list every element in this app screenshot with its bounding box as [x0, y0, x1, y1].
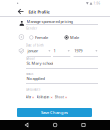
button[interactable]: januar	[27, 48, 51, 57]
staticText: Edit Profile	[28, 9, 49, 14]
staticText: Afar	[26, 95, 31, 99]
staticText: ×	[50, 95, 52, 100]
staticText: No applied	[26, 76, 44, 81]
button[interactable]: Back	[18, 9, 24, 14]
staticText: 1:06	[93, 2, 100, 5]
staticText: Bhoot	[55, 95, 64, 99]
staticText: School	[26, 57, 35, 60]
button[interactable]: Home	[53, 123, 57, 127]
staticText: Female	[35, 35, 48, 40]
staticText: ×	[32, 95, 34, 100]
button[interactable]: Abkhazian	[36, 95, 52, 100]
staticText: Status	[26, 72, 33, 76]
button[interactable]: Male	[65, 35, 79, 40]
button[interactable]: 1	[53, 48, 70, 57]
staticText: Gender	[26, 27, 37, 30]
staticText: Save Changes	[41, 110, 68, 115]
staticText: Manage sponsored pricing	[27, 19, 73, 24]
button[interactable]: Save Changes	[17, 108, 92, 117]
staticText: ×	[65, 95, 67, 100]
staticText: januar	[27, 48, 38, 53]
staticText: Male	[70, 35, 79, 40]
staticText: Date of birth	[26, 44, 44, 47]
staticText: Languages	[26, 88, 40, 91]
button[interactable]: Back	[25, 123, 28, 127]
button[interactable]: Afar	[26, 95, 34, 100]
button[interactable]: Recent apps	[82, 123, 85, 127]
staticText: Abkhazian	[36, 95, 49, 99]
button[interactable]: Female	[29, 35, 48, 40]
staticText: St. Mary school	[26, 61, 53, 66]
staticText: 1979	[74, 48, 82, 53]
button[interactable]: Bhoot	[55, 95, 67, 100]
button[interactable]: 1979	[74, 48, 98, 57]
staticText: 1	[54, 48, 56, 53]
